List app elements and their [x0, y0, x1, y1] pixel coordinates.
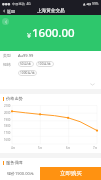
staticText: 2000 — [4, 111, 11, 115]
button[interactable]: 50克/条 — [18, 61, 34, 67]
button[interactable]: 立即购买 — [40, 167, 101, 180]
staticText: ▲ ◀ ◗ 99% — [83, 2, 99, 6]
button[interactable]: 返回 — [2, 18, 9, 25]
staticText: 6月 — [66, 146, 71, 150]
staticText: 现价1900.00元 — [7, 171, 34, 176]
staticText: Au99.99 — [18, 53, 34, 58]
staticText: 价格走势 — [6, 96, 23, 101]
staticText: 5月 — [38, 146, 43, 150]
staticText: 1900 — [4, 118, 11, 122]
button[interactable]: 1000克/条 — [18, 70, 37, 76]
staticText: 上海黄金交易 — [37, 8, 65, 14]
staticText: 4月 — [11, 146, 16, 150]
button[interactable]: 100克/条 — [36, 61, 54, 67]
staticText: 服务保障 — [6, 160, 23, 165]
staticText: 1700 — [4, 131, 11, 135]
staticText: 规格 — [3, 62, 11, 67]
staticText: 50克/条 — [20, 62, 32, 66]
staticText: 1600 — [4, 138, 11, 142]
staticText: 1600.00 — [32, 25, 75, 41]
staticText: 返回 — [7, 9, 15, 14]
button[interactable]: 返回 — [0, 7, 17, 15]
staticText: ¥ — [27, 31, 32, 41]
staticText: ●●● 中国移动 4G — [2, 2, 31, 6]
staticText: 1000克/条 — [20, 71, 35, 75]
staticText: 100克/条 — [38, 62, 52, 66]
staticText: 7月 — [93, 146, 98, 150]
staticText: 2100 — [4, 104, 11, 108]
staticText: 立即购买 — [60, 170, 82, 177]
staticText: 类型 — [3, 53, 11, 58]
staticText: 1800 — [4, 124, 11, 128]
